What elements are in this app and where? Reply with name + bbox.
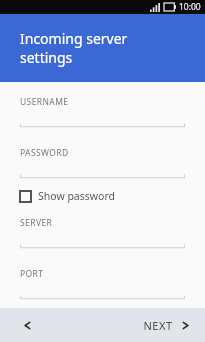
button[interactable]: PORT	[20, 268, 185, 300]
button[interactable]: PASSWORD	[20, 147, 185, 179]
staticText: Incoming server settings	[20, 29, 128, 67]
button[interactable]: NEXT	[139, 310, 195, 340]
button[interactable]: USERNAME	[20, 96, 185, 128]
staticText: USERNAME	[20, 96, 69, 108]
staticText: PORT	[20, 268, 44, 280]
staticText: Show password	[38, 189, 115, 203]
staticText: 10:00	[179, 1, 201, 13]
staticText: PASSWORD	[20, 147, 69, 159]
staticText: SERVER	[20, 217, 53, 229]
staticText: NEXT	[143, 318, 173, 333]
button[interactable]: Show password	[20, 185, 185, 207]
button[interactable]: SERVER	[20, 217, 185, 249]
button[interactable]: Back	[12, 310, 42, 340]
